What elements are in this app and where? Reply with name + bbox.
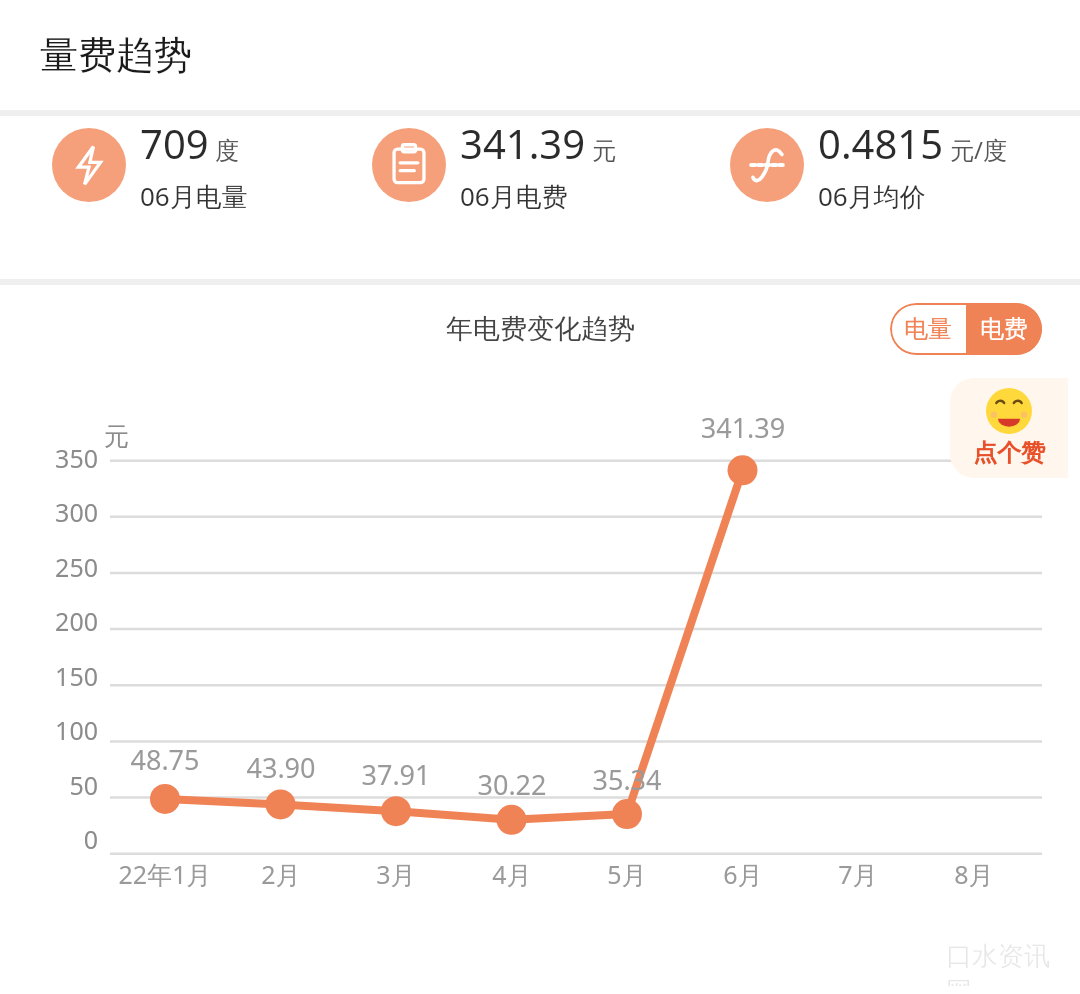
staticText: 元 [592, 136, 616, 166]
staticText: 度 [215, 136, 239, 166]
staticText: 341.39 [460, 116, 586, 170]
button[interactable]: 0.4815 [720, 116, 1080, 214]
staticText: 250 [36, 550, 98, 584]
staticText: 43.90 [221, 749, 341, 786]
staticText: 元 [104, 421, 129, 452]
staticText: 元/度 [950, 133, 1007, 166]
staticText: 30.22 [452, 766, 572, 803]
staticText: 电量 [904, 314, 952, 344]
staticText: 48.75 [105, 741, 225, 778]
staticText: 电费 [980, 314, 1028, 344]
staticText: 8月 [914, 857, 1034, 891]
staticText: 06月电量 [140, 178, 248, 214]
staticText: 35.34 [567, 761, 687, 798]
staticText: 年电费变化趋势 [446, 312, 635, 346]
staticText: 7月 [798, 857, 918, 891]
staticText: 点个赞 [973, 438, 1045, 468]
button[interactable]: 电费 [966, 303, 1042, 355]
staticText: 50 [36, 768, 98, 802]
button[interactable]: 709 [0, 116, 360, 214]
staticText: 709 [140, 116, 209, 170]
staticText: 300 [36, 495, 98, 529]
staticText: 0.4815 [818, 116, 944, 170]
button[interactable]: 点个赞 [950, 378, 1068, 478]
staticText: 5月 [567, 857, 687, 891]
staticText: 350 [36, 441, 98, 475]
staticText: 200 [36, 604, 98, 638]
staticText: 22年1月 [105, 857, 225, 891]
staticText: 2月 [221, 857, 341, 891]
staticText: 4月 [452, 857, 572, 891]
staticText: 量费趋势 [40, 31, 192, 79]
staticText: 100 [36, 713, 98, 747]
staticText: 06月电费 [460, 178, 568, 214]
staticText: 6月 [683, 857, 803, 891]
button[interactable]: 电量 [890, 303, 966, 355]
staticText: 341.39 [683, 409, 803, 446]
staticText: 3月 [336, 857, 456, 891]
button[interactable]: 341.39 [360, 116, 720, 214]
staticText: 口水资讯网 [946, 940, 1066, 986]
staticText: 06月均价 [818, 178, 926, 214]
staticText: 150 [36, 659, 98, 693]
staticText: 37.91 [336, 756, 456, 793]
staticText: 0 [36, 822, 98, 856]
